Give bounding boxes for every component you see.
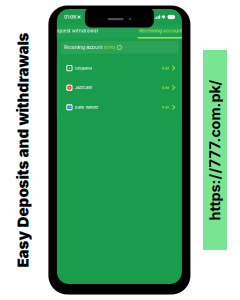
staticText: Easypaisa [75, 66, 92, 70]
button[interactable]: JazzCash [57, 78, 182, 97]
staticText: Request withdrawal [52, 28, 98, 34]
staticText: Add [162, 66, 169, 70]
staticText: Receiving account [64, 45, 102, 50]
staticText: https://777.com.pk/ [144, 141, 240, 159]
button[interactable]: Support [183, 25, 195, 38]
staticText: 01:08 [64, 14, 76, 20]
button[interactable]: Request withdrawal [52, 25, 98, 38]
staticText: JazzCash [75, 85, 92, 90]
staticText: Add [162, 85, 169, 90]
button[interactable]: Back [44, 25, 52, 38]
button[interactable]: Bank Transfer [57, 97, 182, 117]
staticText: Add [162, 105, 169, 109]
button[interactable]: Receiving account [57, 41, 182, 54]
staticText: Bank Transfer [75, 105, 98, 110]
staticText: Easy Deposits and withdrawals [0, 141, 140, 159]
staticText: Receiving account [139, 28, 183, 34]
button[interactable]: Receiving account [139, 25, 183, 38]
staticText: (0/10) [104, 45, 115, 50]
button[interactable]: Easypaisa [57, 58, 182, 78]
